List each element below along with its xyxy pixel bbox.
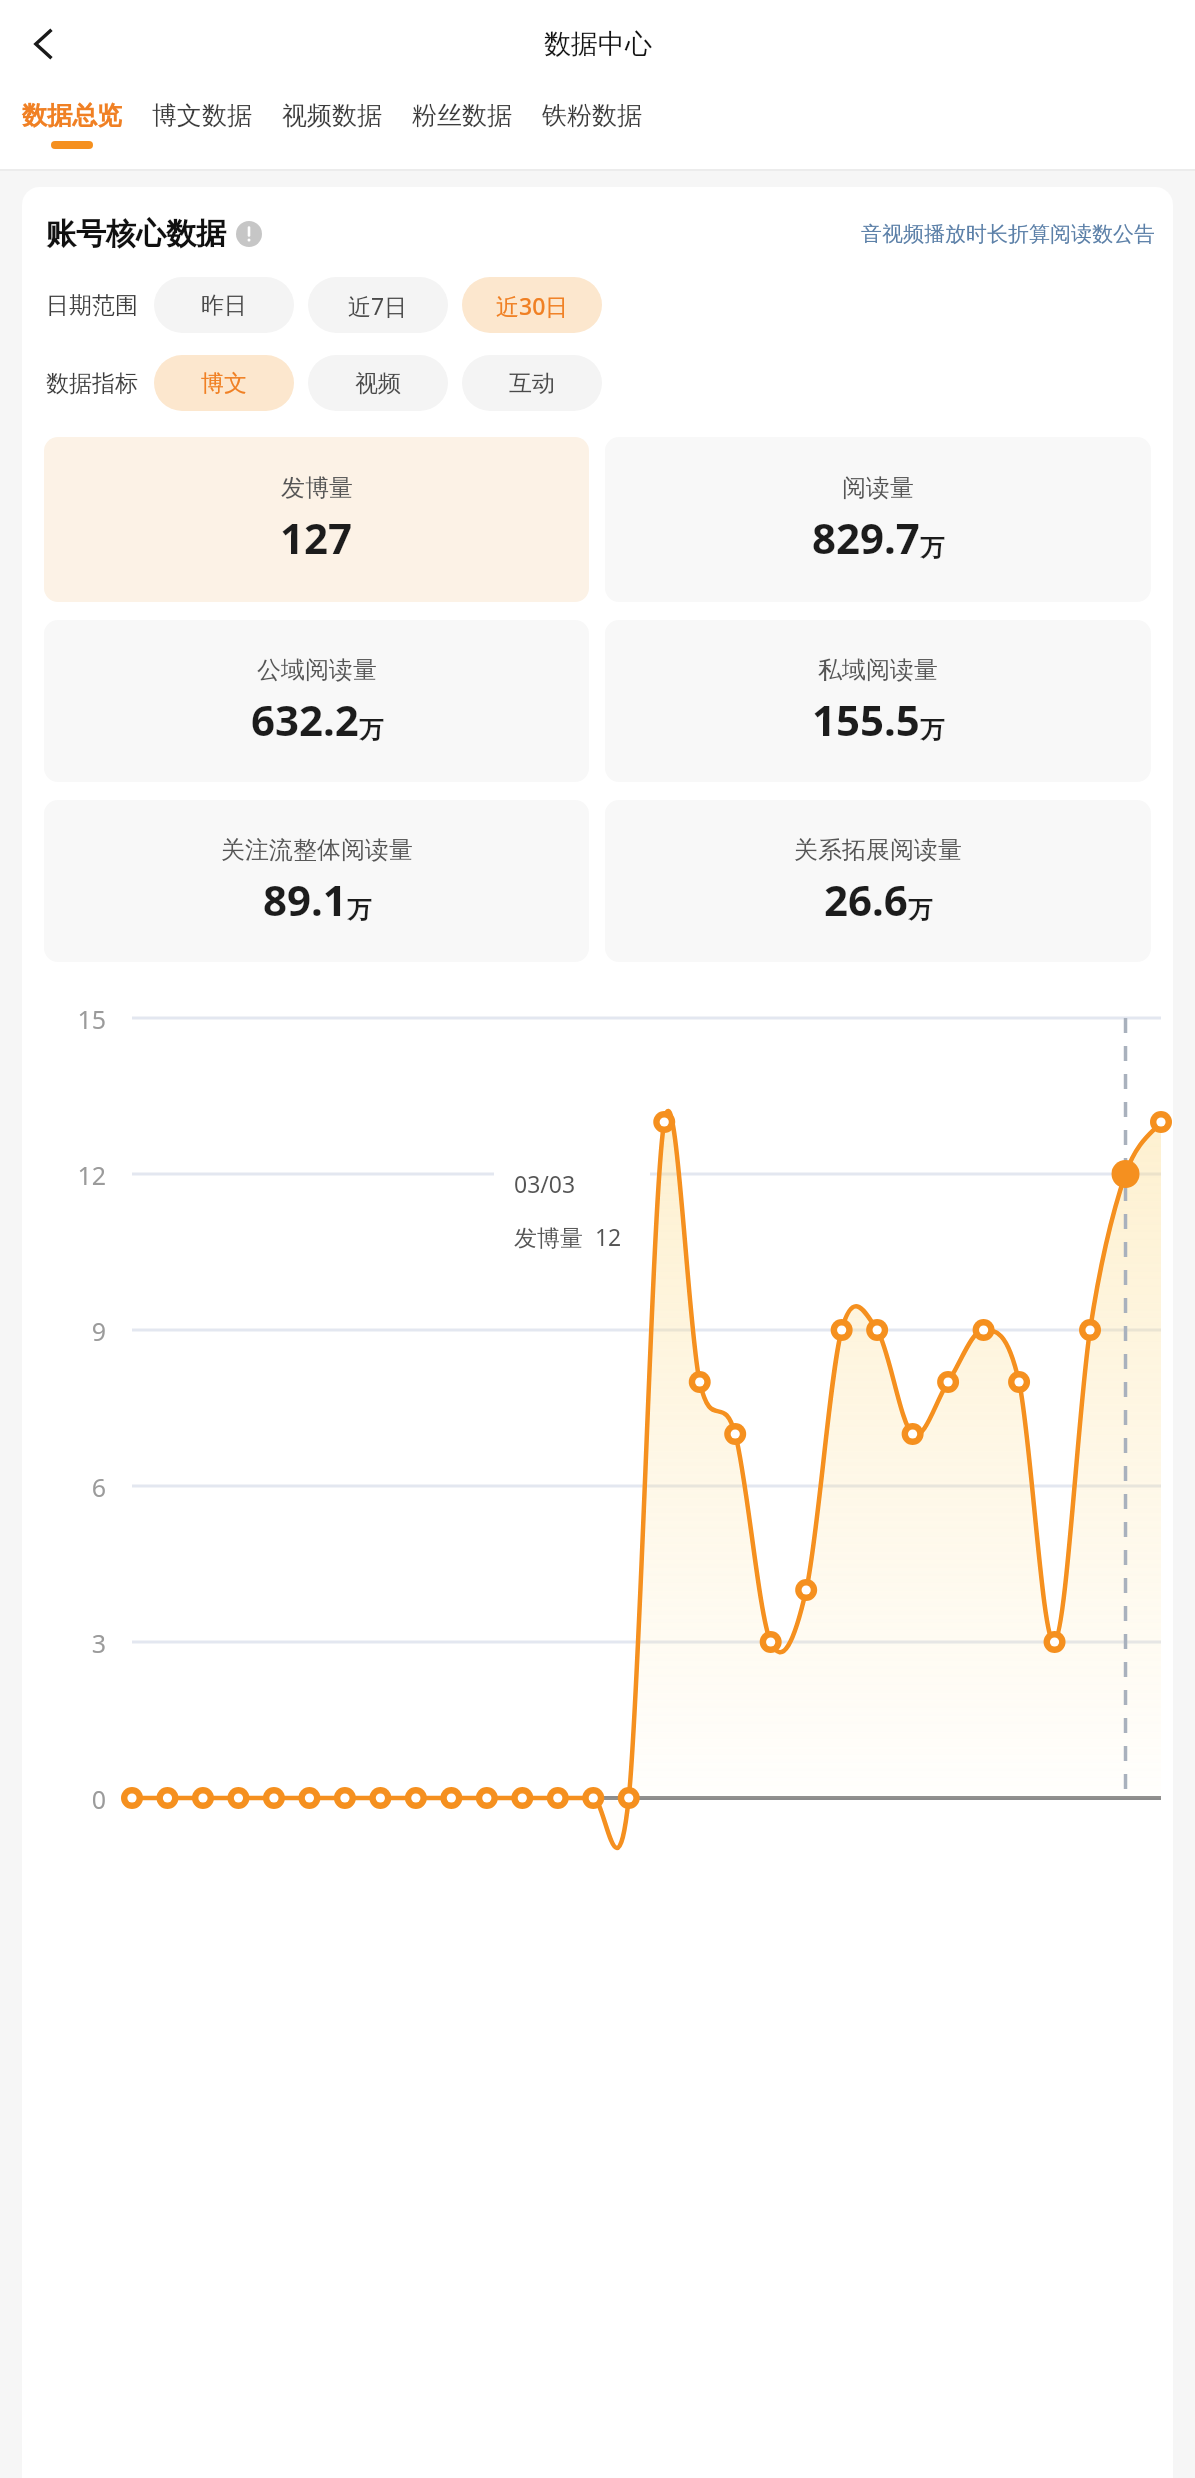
staticText: 26.6 — [824, 871, 908, 928]
button[interactable]: 博文数据 — [152, 88, 252, 171]
button[interactable]: 关注流整体阅读量 — [44, 800, 589, 962]
button[interactable]: 阅读量 — [605, 437, 1151, 602]
button[interactable]: 私域阅读量 — [605, 620, 1151, 782]
staticText: 89.1 — [263, 871, 347, 928]
button[interactable]: 数据总览 — [22, 88, 122, 171]
staticText: 万 — [359, 715, 383, 745]
staticText: 数据中心 — [544, 27, 652, 61]
staticText: 127 — [280, 509, 353, 566]
staticText: 万 — [347, 895, 371, 925]
staticText: 昨日 — [201, 291, 247, 320]
staticText: 12 — [52, 1158, 106, 1192]
staticText: 粉丝数据 — [412, 100, 512, 131]
button[interactable]: 关系拓展阅读量 — [605, 800, 1151, 962]
staticText: 6 — [52, 1470, 106, 1504]
staticText: 发博量 — [281, 473, 353, 503]
staticText: 公域阅读量 — [257, 655, 377, 685]
button[interactable]: 视频数据 — [282, 88, 382, 171]
staticText: 近30日 — [496, 290, 569, 321]
staticText: 15 — [52, 1002, 106, 1036]
staticText: 视频数据 — [282, 100, 382, 131]
button[interactable]: 音视频播放时长折算阅读数公告 — [861, 221, 1155, 247]
button[interactable]: 公域阅读量 — [44, 620, 589, 782]
button[interactable]: 视频 — [308, 355, 448, 411]
button[interactable]: 发博量 — [44, 437, 589, 602]
staticText: 万 — [920, 715, 944, 745]
staticText: 万 — [920, 533, 944, 563]
staticText: 632.2 — [251, 691, 359, 748]
staticText: 9 — [52, 1314, 106, 1348]
button[interactable]: 说明 — [236, 221, 262, 247]
staticText: 铁粉数据 — [542, 100, 642, 131]
staticText: 829.7 — [812, 509, 920, 566]
staticText: 万 — [908, 895, 932, 925]
staticText: 账号核心数据 — [46, 215, 226, 253]
staticText: 博文数据 — [152, 100, 252, 131]
staticText: 数据总览 — [22, 100, 122, 131]
staticText: 3 — [52, 1626, 106, 1660]
staticText: 日期范围 — [46, 291, 138, 320]
button[interactable]: 近7日 — [308, 277, 448, 333]
staticText: 关注流整体阅读量 — [221, 835, 413, 865]
staticText: 关系拓展阅读量 — [794, 835, 962, 865]
staticText: 博文 — [201, 369, 247, 398]
button[interactable]: 昨日 — [154, 277, 294, 333]
button[interactable]: 博文 — [154, 355, 294, 411]
button[interactable]: Back — [6, 6, 82, 82]
staticText: 音视频播放时长折算阅读数公告 — [861, 221, 1155, 247]
staticText: 03/03 — [514, 1168, 576, 1199]
button[interactable]: 铁粉数据 — [542, 88, 642, 171]
staticText: 0 — [52, 1782, 106, 1816]
staticText: 发博量 12 — [514, 1221, 622, 1252]
staticText: 数据指标 — [46, 369, 138, 398]
staticText: 视频 — [355, 369, 401, 398]
button[interactable]: 粉丝数据 — [412, 88, 512, 171]
staticText: 阅读量 — [842, 473, 914, 503]
button[interactable]: 互动 — [462, 355, 602, 411]
staticText: 近7日 — [348, 290, 408, 321]
staticText: 155.5 — [812, 691, 920, 748]
button[interactable]: 近30日 — [462, 277, 602, 333]
staticText: 互动 — [509, 369, 555, 398]
staticText: 私域阅读量 — [818, 655, 938, 685]
